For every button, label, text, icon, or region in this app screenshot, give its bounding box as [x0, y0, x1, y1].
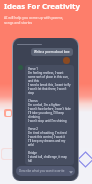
staticText: Write a poem about love — [34, 50, 70, 54]
other: Send — [68, 169, 73, 174]
button[interactable]: Write a poem about love — [31, 48, 73, 56]
button[interactable]: Verse 1 I'm feeling restless, I want som… — [25, 65, 74, 165]
staticText: Verse 1 I'm feeling restless, I want som… — [28, 67, 71, 163]
staticText: AI will help you come up with poems, son… — [4, 15, 64, 25]
other: Assistant — [18, 65, 23, 70]
button[interactable]: Describe what you want to write — [16, 166, 75, 176]
staticText: Describe what you want to write — [19, 169, 65, 173]
staticText: Ideas For Creativity — [4, 1, 80, 12]
